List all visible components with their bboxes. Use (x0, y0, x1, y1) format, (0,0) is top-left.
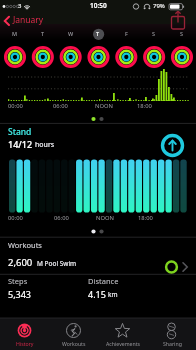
button[interactable] (58, 29, 84, 71)
staticText: 10:50 (90, 1, 107, 10)
staticText: F (125, 30, 128, 37)
staticText: Steps (8, 276, 28, 286)
staticText: 00:00 (8, 214, 23, 222)
button[interactable] (160, 133, 185, 158)
staticText: 06:00 (54, 214, 69, 222)
button[interactable] (141, 29, 167, 71)
staticText: Stand (8, 126, 32, 138)
staticText: January (13, 14, 44, 26)
staticText: 2,600 (8, 256, 33, 269)
button[interactable] (0, 252, 196, 274)
staticText: S (180, 30, 184, 37)
staticText: 79% (153, 2, 165, 10)
staticText: 5,343 (8, 288, 32, 300)
staticText: T (41, 30, 45, 37)
button[interactable] (30, 29, 56, 71)
button[interactable] (147, 319, 196, 350)
staticText: Achievements (106, 340, 141, 347)
staticText: Distance (88, 276, 119, 286)
staticText: W (68, 30, 74, 37)
staticText: NOON (96, 214, 114, 222)
staticText: 4.15 (88, 288, 106, 300)
staticText: km (108, 290, 118, 299)
staticText: 00:00 (8, 102, 23, 110)
staticText: T (96, 30, 100, 37)
staticText: History (16, 340, 34, 347)
staticText: S (152, 30, 156, 37)
staticText: Workouts (62, 340, 86, 347)
staticText: 18:00 (138, 214, 153, 222)
button[interactable] (98, 319, 147, 350)
staticText: Workouts (8, 240, 42, 250)
button[interactable] (2, 29, 28, 71)
staticText: Sharing (163, 340, 182, 347)
button[interactable] (169, 29, 195, 71)
button[interactable] (0, 319, 49, 350)
button[interactable] (49, 319, 98, 350)
button[interactable] (113, 29, 139, 71)
staticText: 18:00 (137, 102, 152, 110)
staticText: NOON (95, 102, 113, 110)
staticText: 3 (18, 2, 22, 10)
staticText: 14/12 (8, 138, 33, 150)
button[interactable] (0, 12, 60, 29)
button[interactable] (166, 10, 190, 32)
staticText: M (12, 30, 18, 37)
staticText: M Pool Swim (37, 259, 77, 268)
staticText: hours (35, 140, 55, 150)
staticText: 06:00 (53, 102, 68, 110)
button[interactable] (85, 29, 111, 71)
